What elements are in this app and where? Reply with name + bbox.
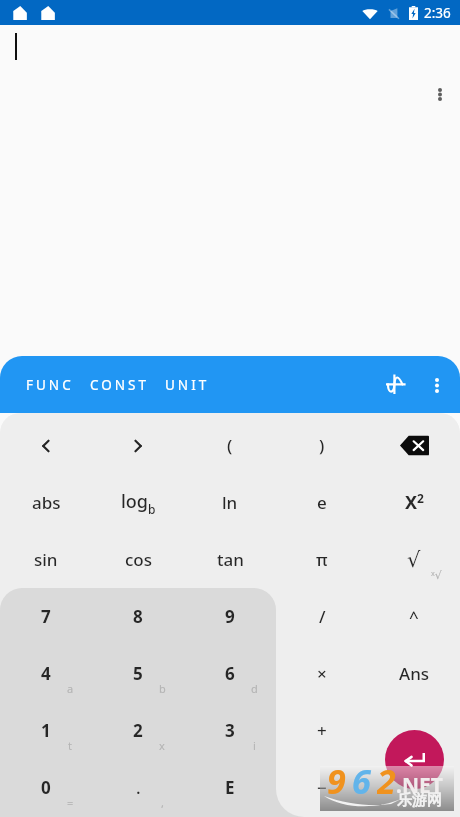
button[interactable]: 8	[92, 588, 184, 645]
staticText: 3	[225, 719, 235, 742]
button[interactable]: π	[276, 531, 368, 588]
staticText: logb	[121, 489, 156, 517]
button[interactable]: /	[276, 588, 368, 645]
button[interactable]: 3	[184, 702, 276, 759]
button[interactable]	[368, 759, 460, 816]
staticText: ˣ√	[431, 567, 442, 582]
button[interactable]	[368, 417, 460, 474]
button[interactable]: 0	[0, 759, 92, 816]
button[interactable]: 7	[0, 588, 92, 645]
button[interactable]: e	[276, 474, 368, 531]
button[interactable]: logb	[92, 474, 184, 531]
staticText: 9	[327, 758, 352, 803]
button[interactable]: UNIT	[159, 368, 216, 402]
staticText: abs	[32, 491, 61, 514]
button[interactable]: 1	[0, 702, 92, 759]
staticText: t	[68, 738, 72, 753]
button[interactable]: ln	[184, 474, 276, 531]
staticText: √	[407, 548, 421, 572]
staticText: X2	[405, 490, 424, 515]
staticText: sin	[34, 548, 58, 571]
staticText: 7	[41, 605, 51, 628]
button[interactable]: FUNC	[20, 368, 80, 402]
staticText: a	[67, 681, 74, 696]
staticText: 8	[133, 605, 143, 628]
button[interactable]: +	[276, 702, 368, 759]
button[interactable]: 5	[92, 645, 184, 702]
staticText: ln	[222, 491, 238, 514]
staticText: b	[159, 681, 166, 696]
staticText: )	[319, 434, 325, 457]
staticText: ^	[409, 605, 419, 628]
button[interactable]: Functions	[378, 366, 414, 402]
button[interactable]: abs	[0, 474, 92, 531]
button[interactable]: tan	[184, 531, 276, 588]
button[interactable]	[0, 417, 92, 474]
button[interactable]	[92, 417, 184, 474]
button[interactable]: 4	[0, 645, 92, 702]
staticText: E	[225, 776, 235, 799]
staticText: /	[319, 605, 326, 628]
button[interactable]: −	[276, 759, 368, 816]
button[interactable]: 9	[184, 588, 276, 645]
staticText: CONST	[90, 376, 149, 394]
staticText: 5	[133, 662, 143, 685]
staticText: 2	[133, 719, 143, 742]
button[interactable]: (	[184, 417, 276, 474]
button[interactable]: cos	[92, 531, 184, 588]
staticText: 6	[352, 758, 377, 803]
button[interactable]: sin	[0, 531, 92, 588]
staticText: x	[159, 738, 165, 753]
button[interactable]: 6	[184, 645, 276, 702]
staticText: 2:36	[424, 4, 451, 22]
staticText: ×	[317, 662, 327, 685]
button[interactable]: Ans	[368, 645, 460, 702]
staticText: FUNC	[26, 376, 74, 394]
staticText: 1	[41, 719, 51, 742]
button[interactable]: ×	[276, 645, 368, 702]
staticText: ,	[161, 795, 164, 810]
button[interactable]: Equals	[385, 730, 444, 789]
staticText: =	[67, 795, 74, 810]
staticText: 4	[41, 662, 51, 685]
staticText: .NET	[396, 771, 443, 800]
button[interactable]: E	[184, 759, 276, 816]
staticText: i	[253, 738, 256, 753]
button[interactable]: More options	[424, 78, 456, 110]
staticText: 9	[225, 605, 235, 628]
staticText: π	[316, 548, 328, 571]
button[interactable]: √	[368, 531, 460, 588]
button[interactable]: X2	[368, 474, 460, 531]
staticText: 0	[41, 776, 51, 799]
staticText: Ans	[399, 662, 430, 685]
button[interactable]: CONST	[84, 368, 155, 402]
staticText: 2	[377, 758, 402, 803]
staticText: cos	[125, 548, 152, 571]
staticText: e	[317, 491, 327, 514]
staticText: +	[317, 719, 327, 742]
staticText: d	[251, 681, 258, 696]
staticText: −	[317, 776, 327, 799]
button[interactable]: )	[276, 417, 368, 474]
staticText: (	[227, 434, 233, 457]
button[interactable]: 2	[92, 702, 184, 759]
button[interactable]: .	[92, 759, 184, 816]
button[interactable]: More options	[420, 368, 454, 402]
staticText: 乐游网	[397, 791, 442, 810]
staticText: 6	[225, 662, 235, 685]
staticText: .	[136, 776, 141, 799]
button[interactable]	[368, 702, 460, 759]
button[interactable]: ^	[368, 588, 460, 645]
staticText: tan	[217, 548, 244, 571]
staticText: UNIT	[165, 376, 210, 394]
